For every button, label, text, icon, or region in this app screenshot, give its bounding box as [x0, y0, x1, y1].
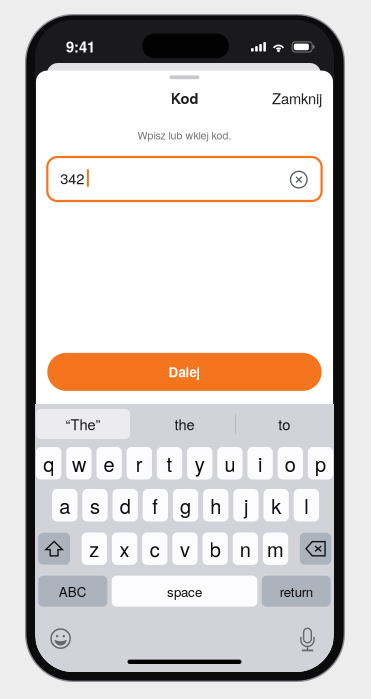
button[interactable]: Delete	[300, 533, 331, 565]
staticText: g	[180, 491, 191, 519]
button[interactable]: k	[263, 489, 289, 521]
button[interactable]: e	[96, 447, 122, 479]
staticText: Zamknij	[272, 88, 322, 108]
button[interactable]: ABC	[38, 576, 107, 607]
button[interactable]: Dictation	[300, 628, 315, 652]
button[interactable]: c	[142, 532, 167, 565]
button[interactable]: s	[82, 489, 108, 521]
staticText: u	[224, 449, 235, 477]
button[interactable]: m	[263, 532, 288, 565]
staticText: e	[104, 449, 115, 477]
button[interactable]: p	[308, 447, 333, 479]
staticText: Wpisz lub wklej kod.	[137, 128, 231, 142]
button[interactable]: to	[234, 409, 334, 439]
staticText: y	[195, 449, 205, 477]
button[interactable]: the	[135, 409, 234, 439]
button[interactable]: r	[127, 447, 152, 479]
staticText: a	[59, 491, 70, 519]
staticText: w	[72, 449, 86, 477]
button[interactable]: z	[82, 532, 107, 565]
button[interactable]: i	[247, 447, 273, 479]
button[interactable]: Shift	[38, 533, 70, 565]
staticText: Kod	[170, 88, 198, 108]
staticText: j	[244, 491, 248, 519]
button[interactable]: u	[217, 447, 242, 479]
staticText: h	[210, 491, 221, 519]
staticText: s	[90, 491, 100, 519]
button[interactable]: Clear text	[290, 171, 307, 188]
staticText: l	[304, 491, 308, 519]
button[interactable]: d	[112, 489, 138, 521]
button[interactable]: t	[157, 447, 182, 479]
button[interactable]: n	[233, 532, 258, 565]
staticText: n	[240, 535, 251, 563]
button[interactable]: w	[66, 447, 91, 479]
button[interactable]: “The”	[36, 409, 130, 439]
staticText: 342	[60, 168, 84, 188]
button[interactable]: q	[36, 447, 61, 479]
staticText: d	[120, 491, 131, 519]
staticText: the	[174, 414, 194, 434]
staticText: “The”	[65, 414, 100, 434]
button[interactable]: x	[112, 532, 137, 565]
staticText: ABC	[59, 582, 87, 600]
button[interactable]: space	[112, 576, 257, 607]
staticText: space	[167, 582, 202, 600]
staticText: x	[119, 535, 129, 563]
staticText: b	[210, 535, 221, 563]
button[interactable]: b	[202, 532, 228, 565]
staticText: Dalej	[168, 363, 200, 381]
staticText: i	[258, 449, 262, 477]
button[interactable]: v	[172, 532, 198, 565]
button[interactable]: h	[203, 489, 228, 521]
button[interactable]: y	[187, 447, 212, 479]
staticText: return	[280, 582, 313, 600]
staticText: q	[43, 449, 54, 477]
staticText: m	[267, 535, 284, 563]
staticText: k	[271, 491, 281, 519]
staticText: f	[152, 491, 158, 519]
button[interactable]: o	[278, 447, 303, 479]
button[interactable]: return	[262, 576, 331, 607]
staticText: c	[150, 535, 160, 563]
button[interactable]: f	[143, 489, 168, 521]
button[interactable]: Emoji keyboard	[51, 629, 70, 648]
staticText: v	[180, 535, 190, 563]
button[interactable]: a	[52, 489, 77, 521]
button[interactable]: Zamknij	[242, 91, 322, 104]
button[interactable]: Dalej	[47, 353, 322, 391]
staticText: to	[278, 414, 290, 434]
staticText: o	[285, 449, 296, 477]
staticText: p	[315, 449, 326, 477]
staticText: 9:41	[66, 36, 95, 57]
button[interactable]: g	[173, 489, 198, 521]
staticText: r	[136, 449, 143, 477]
staticText: z	[89, 535, 99, 563]
staticText: t	[166, 449, 172, 477]
button[interactable]: l	[294, 489, 319, 521]
button[interactable]: j	[233, 489, 259, 521]
